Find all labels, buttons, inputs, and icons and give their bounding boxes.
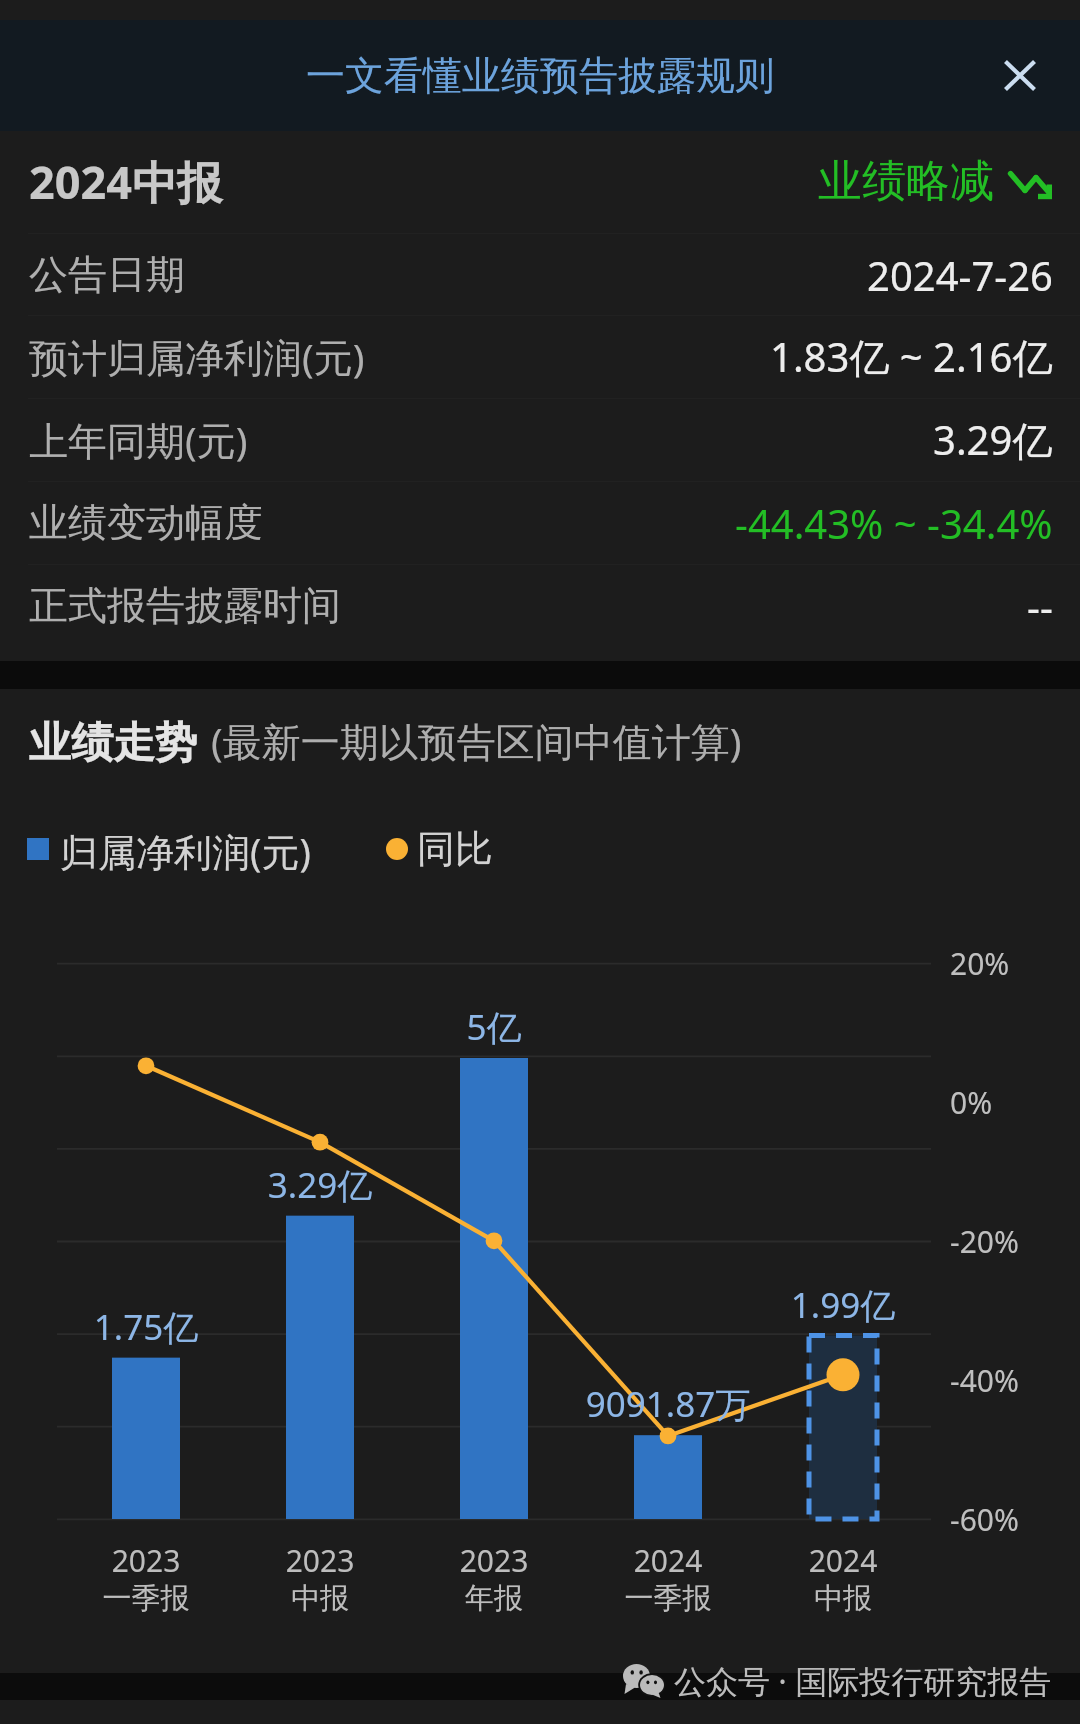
staticText: 1.75亿 [0,1303,296,1351]
staticText: 预计归属净利润(元) [29,330,365,383]
staticText: 上年同期(元) [29,413,248,466]
button[interactable]: Close [970,20,1080,131]
staticText: 20% [950,943,1010,984]
staticText: 公告日期 [29,250,185,299]
staticText: 一季报 [518,1580,818,1617]
staticText: 年报 [344,1580,644,1617]
staticText: 2024 [693,1540,993,1581]
staticText: 正式报告披露时间 [29,581,341,630]
staticText: 业绩略减 [818,154,994,209]
staticText: -60% [950,1499,1019,1540]
staticText: -20% [950,1221,1019,1262]
staticText: 2023 [0,1540,296,1581]
staticText: 一文看懂业绩预告披露规则 [306,51,774,100]
staticText: 5亿 [344,1003,644,1051]
staticText: 归属净利润(元) [60,825,311,877]
staticText: 2023 [344,1540,644,1581]
staticText: 一季报 [0,1580,296,1617]
button[interactable]: 一文看懂业绩预告披露规则 [0,20,1080,131]
button[interactable]: 预计归属净利润(元) [0,315,1080,398]
button[interactable]: 2024中报 [0,136,1080,226]
staticText: 2024中报 [29,151,222,212]
staticText: -- [1027,579,1053,633]
staticText: 1.99亿 [693,1281,993,1329]
staticText: 业绩走势 [29,717,197,770]
staticText: -40% [950,1360,1019,1401]
staticText: 中报 [170,1580,470,1617]
staticText: 同比 [417,825,493,873]
staticText: 3.29亿 [170,1161,470,1209]
staticText: 中报 [693,1580,993,1617]
other: WeChat [623,1662,669,1698]
staticText: 2024 [518,1540,818,1581]
staticText: 0% [950,1082,993,1123]
staticText: 3.29亿 [933,412,1053,467]
button[interactable]: 业绩变动幅度 [0,481,1080,564]
staticText: 业绩变动幅度 [29,498,263,547]
staticText: 2023 [170,1540,470,1581]
button[interactable]: 公告日期 [0,233,1080,316]
button[interactable]: 正式报告披露时间 [0,564,1080,647]
staticText: 2024-7-26 [867,248,1053,302]
staticText: 1.83亿 ~ 2.16亿 [770,329,1053,384]
staticText: 9091.87万 [518,1380,818,1428]
staticText: -44.43% ~ -34.4% [735,496,1053,550]
staticText: (最新一期以预告区间中值计算) [211,714,742,767]
staticText: 公众号 · 国际投行研究报告 [674,1659,1052,1703]
button[interactable]: 上年同期(元) [0,398,1080,481]
